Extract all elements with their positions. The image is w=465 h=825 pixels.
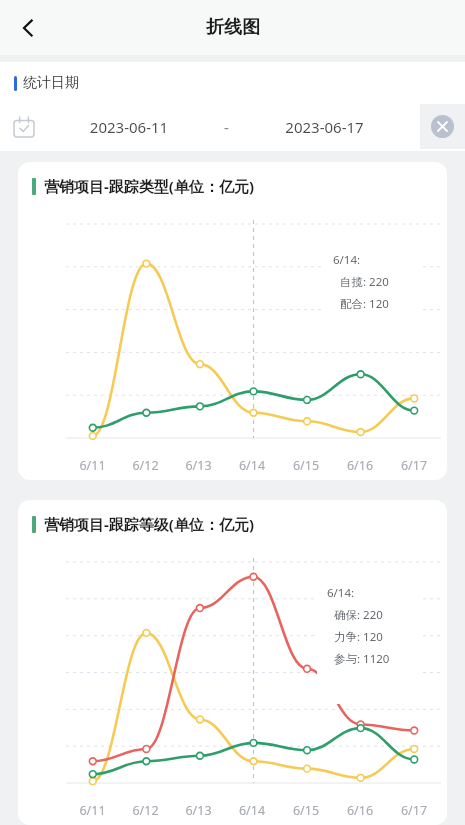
staticText: 营销项目-跟踪等级(单位：亿元) [44, 514, 254, 534]
staticText: 参与: 1120 [334, 651, 390, 667]
staticText: 力争: 120 [334, 629, 383, 645]
staticText: 6/17 [387, 802, 441, 819]
staticText: - [224, 117, 229, 137]
staticText: 2023-06-17 [229, 117, 420, 137]
staticText: 6/13 [172, 802, 225, 819]
button[interactable]: 营销项目-跟踪类型(单位：亿元) [18, 162, 447, 480]
button[interactable]: 2023-06-11 [0, 104, 420, 149]
staticText: 6/11 [66, 802, 119, 819]
staticText: 6/11 [66, 457, 119, 474]
staticText: 6/16 [333, 802, 387, 819]
staticText: 6/14: [333, 252, 361, 268]
staticText: 统计日期 [23, 74, 79, 92]
staticText: 6/12 [119, 802, 172, 819]
staticText: 6/12 [119, 457, 172, 474]
staticText: 2023-06-11 [34, 117, 224, 137]
staticText: 配合: 120 [340, 296, 389, 312]
staticText: 6/17 [387, 457, 441, 474]
staticText: 6/16 [333, 457, 387, 474]
staticText: 6/14 [225, 457, 279, 474]
button[interactable]: 营销项目-跟踪等级(单位：亿元) [18, 500, 447, 825]
staticText: 6/15 [279, 457, 333, 474]
staticText: 6/15 [279, 802, 333, 819]
staticText: 6/13 [172, 457, 225, 474]
staticText: 6/14 [225, 802, 279, 819]
staticText: 6/14: [327, 585, 355, 601]
staticText: 营销项目-跟踪类型(单位：亿元) [44, 176, 254, 196]
staticText: 折线图 [206, 16, 260, 39]
staticText: 自揽: 220 [340, 274, 389, 290]
staticText: 确保: 220 [334, 607, 383, 623]
button[interactable]: Back [6, 6, 50, 50]
button[interactable]: Clear date range [420, 104, 465, 149]
